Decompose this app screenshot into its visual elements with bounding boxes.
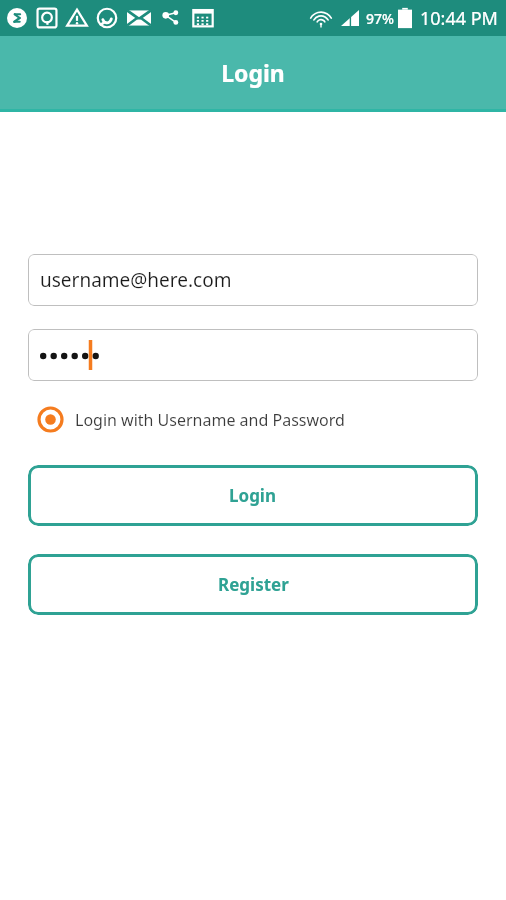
button[interactable]: Login <box>28 465 478 526</box>
staticText: Login <box>229 484 277 507</box>
staticText: Login <box>221 57 285 88</box>
staticText: 10:44 PM <box>420 6 498 31</box>
staticText: 97% <box>366 9 394 28</box>
staticText: Login with Username and Password <box>75 409 345 431</box>
button[interactable]: username@here.com <box>28 254 478 306</box>
button[interactable] <box>28 329 478 381</box>
staticText: Register <box>218 573 289 596</box>
button[interactable]: Register <box>28 554 478 615</box>
staticText: username@here.com <box>40 267 232 293</box>
button[interactable]: Login with Username and Password <box>28 403 478 436</box>
